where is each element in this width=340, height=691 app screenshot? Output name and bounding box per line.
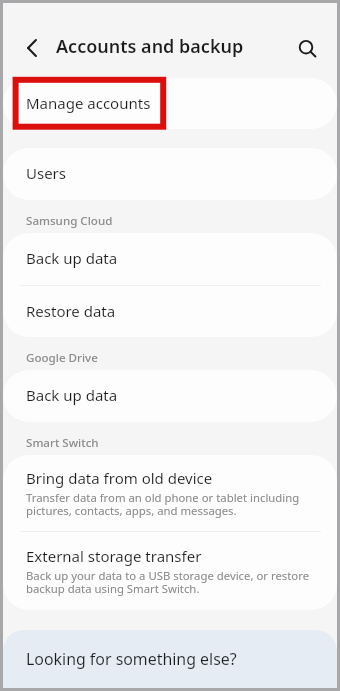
button[interactable]: Back up data [3, 233, 337, 285]
staticText: Accounts and backup [56, 34, 244, 59]
button[interactable]: Looking for something else? [3, 630, 337, 688]
staticText: Google Drive [26, 350, 98, 366]
staticText: Back up data [26, 248, 118, 268]
button[interactable]: External storage transfer [3, 532, 337, 610]
button[interactable]: Back up data [3, 370, 337, 422]
button[interactable]: Users [3, 148, 337, 200]
staticText: Back up your data to a USB storage devic… [26, 570, 310, 596]
staticText: Smart Switch [26, 435, 99, 451]
staticText: Transfer data from an old phone or table… [26, 492, 300, 518]
staticText: External storage transfer [26, 546, 202, 566]
staticText: Bring data from old device [26, 468, 213, 488]
staticText: Restore data [26, 301, 116, 321]
staticText: Back up data [26, 385, 118, 405]
staticText: Users [26, 163, 66, 183]
button[interactable]: Search [292, 33, 326, 67]
staticText: Samsung Cloud [26, 213, 113, 229]
button[interactable]: Bring data from old device [3, 455, 337, 531]
button[interactable]: Navigate up [16, 32, 48, 64]
button[interactable]: Manage accounts [3, 78, 337, 129]
staticText: Manage accounts [26, 93, 151, 113]
button[interactable]: Restore data [3, 286, 337, 337]
staticText: Looking for something else? [26, 648, 237, 670]
